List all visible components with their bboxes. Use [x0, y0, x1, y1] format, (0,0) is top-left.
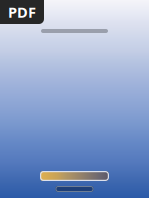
staticText: PDF	[8, 2, 36, 22]
button[interactable]: PDF	[0, 0, 44, 24]
